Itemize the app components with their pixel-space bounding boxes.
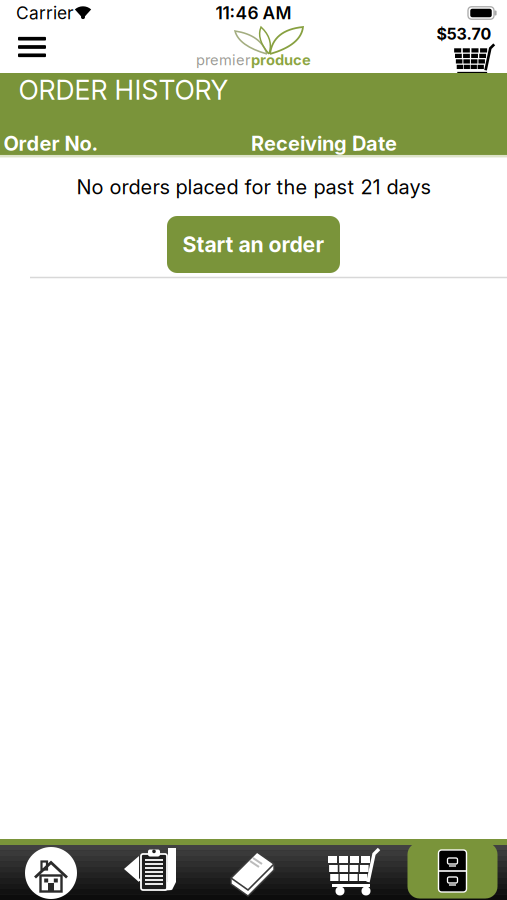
button[interactable]: Start an order	[167, 216, 340, 273]
staticText: No orders placed for the past 21 days	[76, 175, 430, 199]
button[interactable]	[226, 846, 280, 898]
button[interactable]	[435, 848, 469, 894]
button[interactable]	[14, 33, 50, 61]
staticText: Start an order	[182, 232, 324, 257]
button[interactable]	[324, 846, 380, 896]
button[interactable]	[25, 847, 77, 899]
button[interactable]	[451, 42, 495, 74]
staticText: produce	[251, 51, 311, 68]
staticText: 11:46 AM	[215, 3, 291, 23]
staticText: Carrier	[16, 3, 74, 23]
staticText: premier	[196, 51, 251, 68]
staticText: Receiving Date	[251, 132, 397, 155]
staticText: Order No.	[3, 132, 98, 155]
staticText: ORDER HISTORY	[18, 74, 228, 106]
staticText: $53.70	[436, 25, 491, 43]
button[interactable]	[123, 846, 179, 896]
